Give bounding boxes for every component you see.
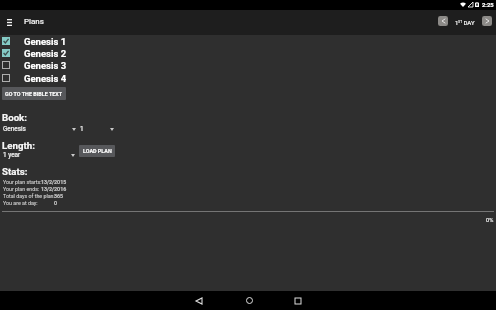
staticText: Book: [2, 112, 28, 123]
staticText: 13/2/2016 [41, 186, 67, 192]
button[interactable]: Back [189, 291, 209, 310]
button[interactable]: Genesis 3 [0, 59, 70, 71]
staticText: 1ST DAY [455, 19, 475, 26]
staticText: GO TO THE BIBLE TEXT [5, 91, 63, 97]
staticText: Genesis 2 [24, 48, 67, 59]
button[interactable]: Genesis 1 [0, 35, 70, 47]
staticText: Total days of the plan: [3, 193, 55, 199]
staticText: Genesis 3 [24, 60, 67, 71]
staticText: Genesis 1 [24, 36, 67, 47]
staticText: LOAD PLAN [83, 148, 112, 154]
staticText: Plans [24, 17, 44, 26]
staticText: 1 [80, 125, 84, 133]
staticText: 365 [54, 193, 64, 199]
button[interactable]: Home [239, 291, 259, 310]
staticText: You are at day: [3, 200, 38, 206]
button[interactable]: Genesis 4 [0, 72, 70, 84]
staticText: Genesis 4 [24, 73, 67, 84]
staticText: Length: [2, 140, 35, 151]
button[interactable]: Open navigation drawer [2, 12, 16, 32]
staticText: Genesis [3, 125, 26, 133]
staticText: Your plan starts: [3, 179, 42, 185]
button[interactable]: Next day [482, 16, 492, 26]
button[interactable]: Recent apps [288, 291, 308, 310]
button[interactable]: Genesis [0, 124, 78, 135]
button[interactable]: 1 year [0, 150, 77, 161]
staticText: 13/2/2015 [41, 179, 67, 185]
button[interactable]: 1 [78, 124, 116, 135]
button[interactable]: Previous day [438, 16, 448, 26]
staticText: Your plan ends: [3, 186, 41, 192]
staticText: 0% [486, 217, 494, 224]
button[interactable]: Genesis 2 [0, 47, 70, 59]
staticText: Stats: [2, 166, 28, 177]
staticText: 2:25 [482, 2, 494, 9]
staticText: 1 year [3, 151, 21, 159]
staticText: 0 [54, 200, 58, 206]
button[interactable]: GO TO THE BIBLE TEXT [2, 87, 66, 100]
button[interactable]: LOAD PLAN [79, 145, 115, 157]
